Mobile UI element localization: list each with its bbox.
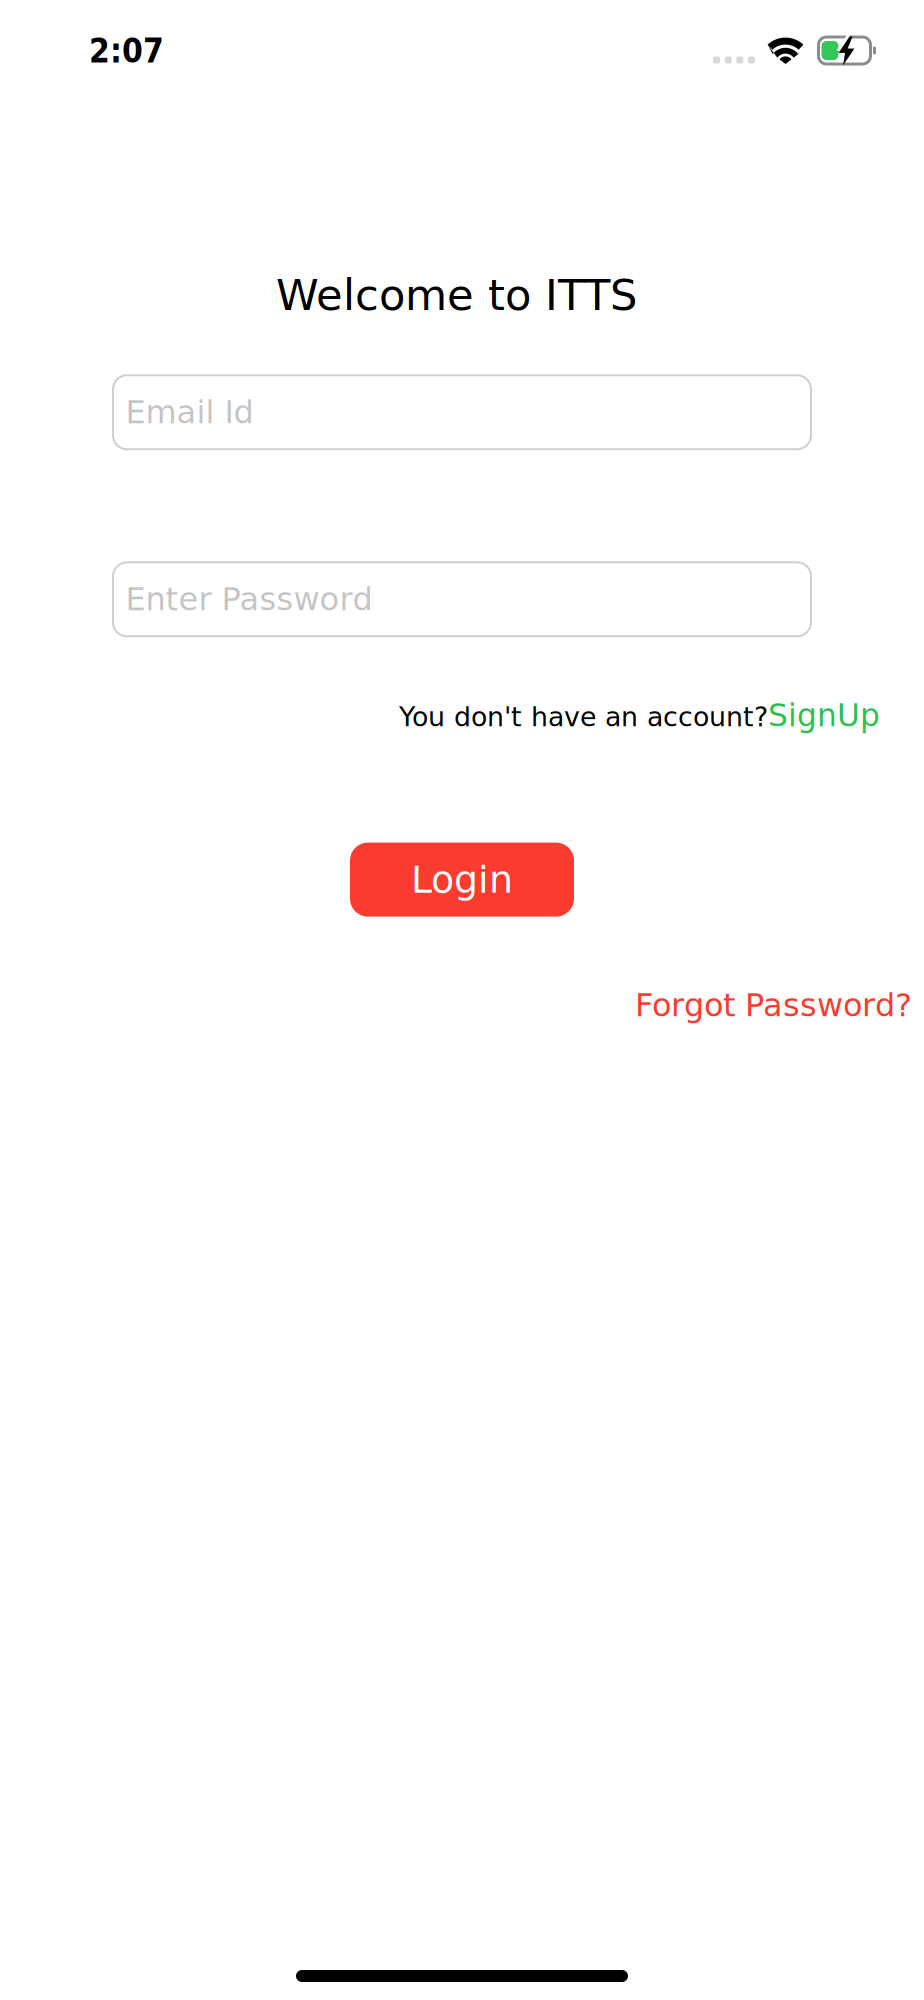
staticText: 2:07 bbox=[89, 32, 164, 70]
button[interactable]: Login bbox=[350, 843, 574, 917]
staticText: Enter Password bbox=[125, 581, 372, 618]
staticText: You don't have an account? bbox=[399, 701, 768, 733]
button[interactable]: Email Id bbox=[113, 375, 811, 449]
button[interactable]: SignUp bbox=[768, 697, 880, 734]
staticText: Email Id bbox=[125, 394, 253, 431]
button[interactable]: Enter Password bbox=[113, 562, 811, 636]
staticText: SignUp bbox=[768, 697, 880, 734]
staticText: Login bbox=[411, 858, 513, 902]
staticText: Forgot Password? bbox=[635, 987, 912, 1024]
button[interactable]: Forgot Password? bbox=[635, 987, 912, 1024]
staticText: Welcome to ITTS bbox=[276, 270, 637, 320]
